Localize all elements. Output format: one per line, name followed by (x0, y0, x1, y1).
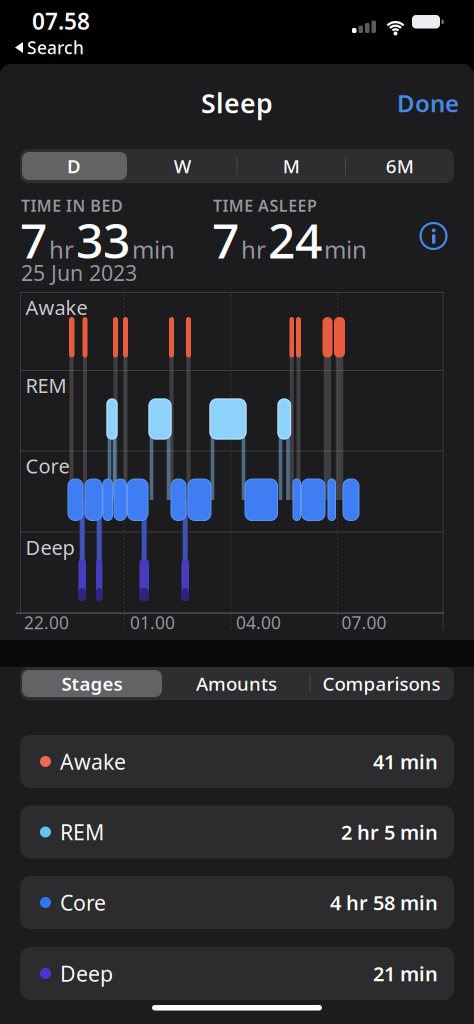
staticText: 7 (20, 208, 47, 272)
staticText: 33 (76, 208, 130, 272)
staticText: Comparisons (322, 671, 440, 696)
staticText: 01.00 (130, 611, 175, 634)
staticText: REM (60, 818, 104, 846)
staticText: REM (25, 372, 66, 399)
button[interactable]: Stages (20, 667, 163, 700)
button[interactable]: More Information (420, 223, 446, 249)
staticText: Awake (60, 747, 126, 776)
staticText: D (67, 154, 81, 178)
button[interactable]: Deep (20, 947, 454, 1000)
staticText: 6M (386, 154, 414, 178)
staticText: 07.00 (341, 611, 386, 634)
button[interactable]: Comparisons (310, 667, 453, 700)
staticText: 4 hr 58 min (330, 889, 438, 916)
button[interactable]: W (129, 149, 237, 183)
staticText: TIME IN BED (21, 195, 123, 216)
button[interactable]: REM (20, 805, 454, 858)
staticText: Sleep (201, 85, 273, 121)
staticText: 7 (212, 208, 239, 272)
staticText: 07.58 (32, 6, 90, 36)
staticText: min (324, 233, 367, 265)
staticText: min (132, 233, 175, 265)
button[interactable]: Amounts (165, 667, 308, 700)
staticText: 41 min (373, 748, 438, 775)
staticText: Stages (61, 671, 122, 696)
staticText: Core (60, 888, 106, 917)
button[interactable]: M (237, 149, 345, 183)
staticText: M (283, 154, 300, 178)
staticText: 2 hr 5 min (341, 819, 438, 845)
staticText: 04.00 (236, 611, 281, 634)
button[interactable]: Done (397, 87, 459, 119)
button[interactable]: Awake (20, 735, 454, 788)
staticText: 21 min (373, 960, 438, 987)
button[interactable]: Core (20, 876, 454, 929)
staticText: 22.00 (24, 611, 69, 634)
button[interactable]: Back to Search (15, 36, 84, 59)
staticText: W (174, 154, 192, 178)
staticText: Amounts (196, 671, 277, 696)
staticText: hr (241, 233, 266, 265)
staticText: Core (25, 452, 69, 479)
staticText: Deep (60, 959, 113, 988)
staticText: hr (49, 233, 74, 265)
button[interactable]: 6M (346, 149, 454, 183)
staticText: 24 (268, 208, 322, 272)
staticText: 25 Jun 2023 (21, 258, 137, 287)
staticText: Search (27, 36, 84, 59)
staticText: Awake (25, 294, 87, 321)
button[interactable]: D (20, 149, 128, 183)
staticText: Done (397, 87, 459, 119)
staticText: TIME ASLEEP (213, 195, 317, 216)
staticText: Deep (25, 534, 74, 561)
